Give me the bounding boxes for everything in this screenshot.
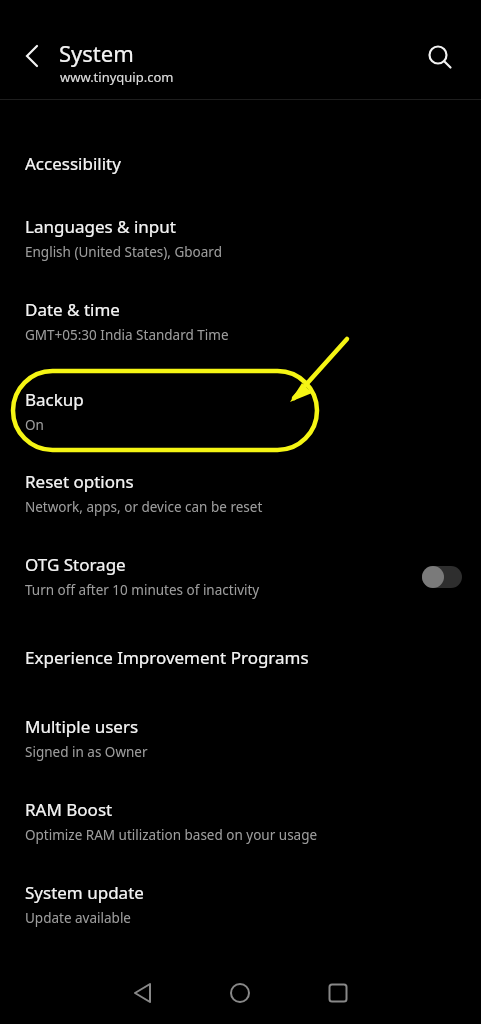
button[interactable]: Back <box>12 36 52 76</box>
staticText: System <box>59 38 134 68</box>
button[interactable]: OTG Storage toggle <box>422 565 464 589</box>
button[interactable]: OTG Storage <box>0 553 481 609</box>
button[interactable]: Languages & input <box>0 215 481 271</box>
staticText: Signed in as Owner <box>25 743 148 761</box>
button[interactable]: Home <box>220 973 260 1013</box>
staticText: Update available <box>25 909 131 927</box>
button[interactable]: Accessibility <box>0 152 481 192</box>
button[interactable]: Backup <box>0 388 481 444</box>
button[interactable]: Recent apps <box>318 973 358 1013</box>
button[interactable]: Back <box>123 973 163 1013</box>
staticText: Languages & input <box>25 215 176 238</box>
staticText: On <box>25 416 44 434</box>
staticText: Backup <box>25 388 84 411</box>
staticText: www.tinyquip.com <box>60 68 174 86</box>
button[interactable]: Search <box>418 35 460 77</box>
staticText: OTG Storage <box>25 553 126 576</box>
button[interactable]: System update <box>0 881 481 937</box>
staticText: Optimize RAM utilization based on your u… <box>25 826 318 844</box>
button[interactable]: Experience Improvement Programs <box>0 646 481 686</box>
button[interactable]: Multiple users <box>0 715 481 771</box>
staticText: Experience Improvement Programs <box>25 646 309 669</box>
button[interactable]: RAM Boost <box>0 798 481 854</box>
staticText: Multiple users <box>25 715 139 738</box>
staticText: Turn off after 10 minutes of inactivity <box>25 581 260 599</box>
staticText: Date & time <box>25 298 120 321</box>
staticText: English (United States), Gboard <box>25 243 222 261</box>
staticText: Accessibility <box>25 152 121 175</box>
staticText: Network, apps, or device can be reset <box>25 498 263 516</box>
staticText: GMT+05:30 India Standard Time <box>25 326 229 344</box>
staticText: System update <box>25 881 144 904</box>
button[interactable]: Date & time <box>0 298 481 354</box>
staticText: Reset options <box>25 470 134 493</box>
button[interactable]: Reset options <box>0 470 481 526</box>
staticText: RAM Boost <box>25 798 113 821</box>
